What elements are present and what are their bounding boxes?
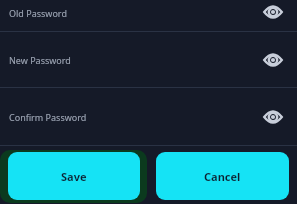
button[interactable]: Show New Password: [261, 50, 285, 70]
staticText: Save: [61, 169, 87, 184]
staticText: Cancel: [204, 169, 241, 184]
button[interactable]: Show Confirm Password: [261, 107, 285, 127]
button[interactable]: Cancel: [156, 152, 289, 200]
staticText: Confirm Password: [9, 111, 261, 123]
button[interactable]: Show Old Password: [261, 2, 285, 22]
button[interactable]: New Password: [0, 32, 297, 87]
button[interactable]: Save: [8, 152, 140, 200]
button[interactable]: Old Password: [0, 0, 297, 31]
button[interactable]: Confirm Password: [0, 89, 297, 145]
staticText: Old Password: [9, 7, 261, 19]
staticText: New Password: [9, 54, 261, 66]
